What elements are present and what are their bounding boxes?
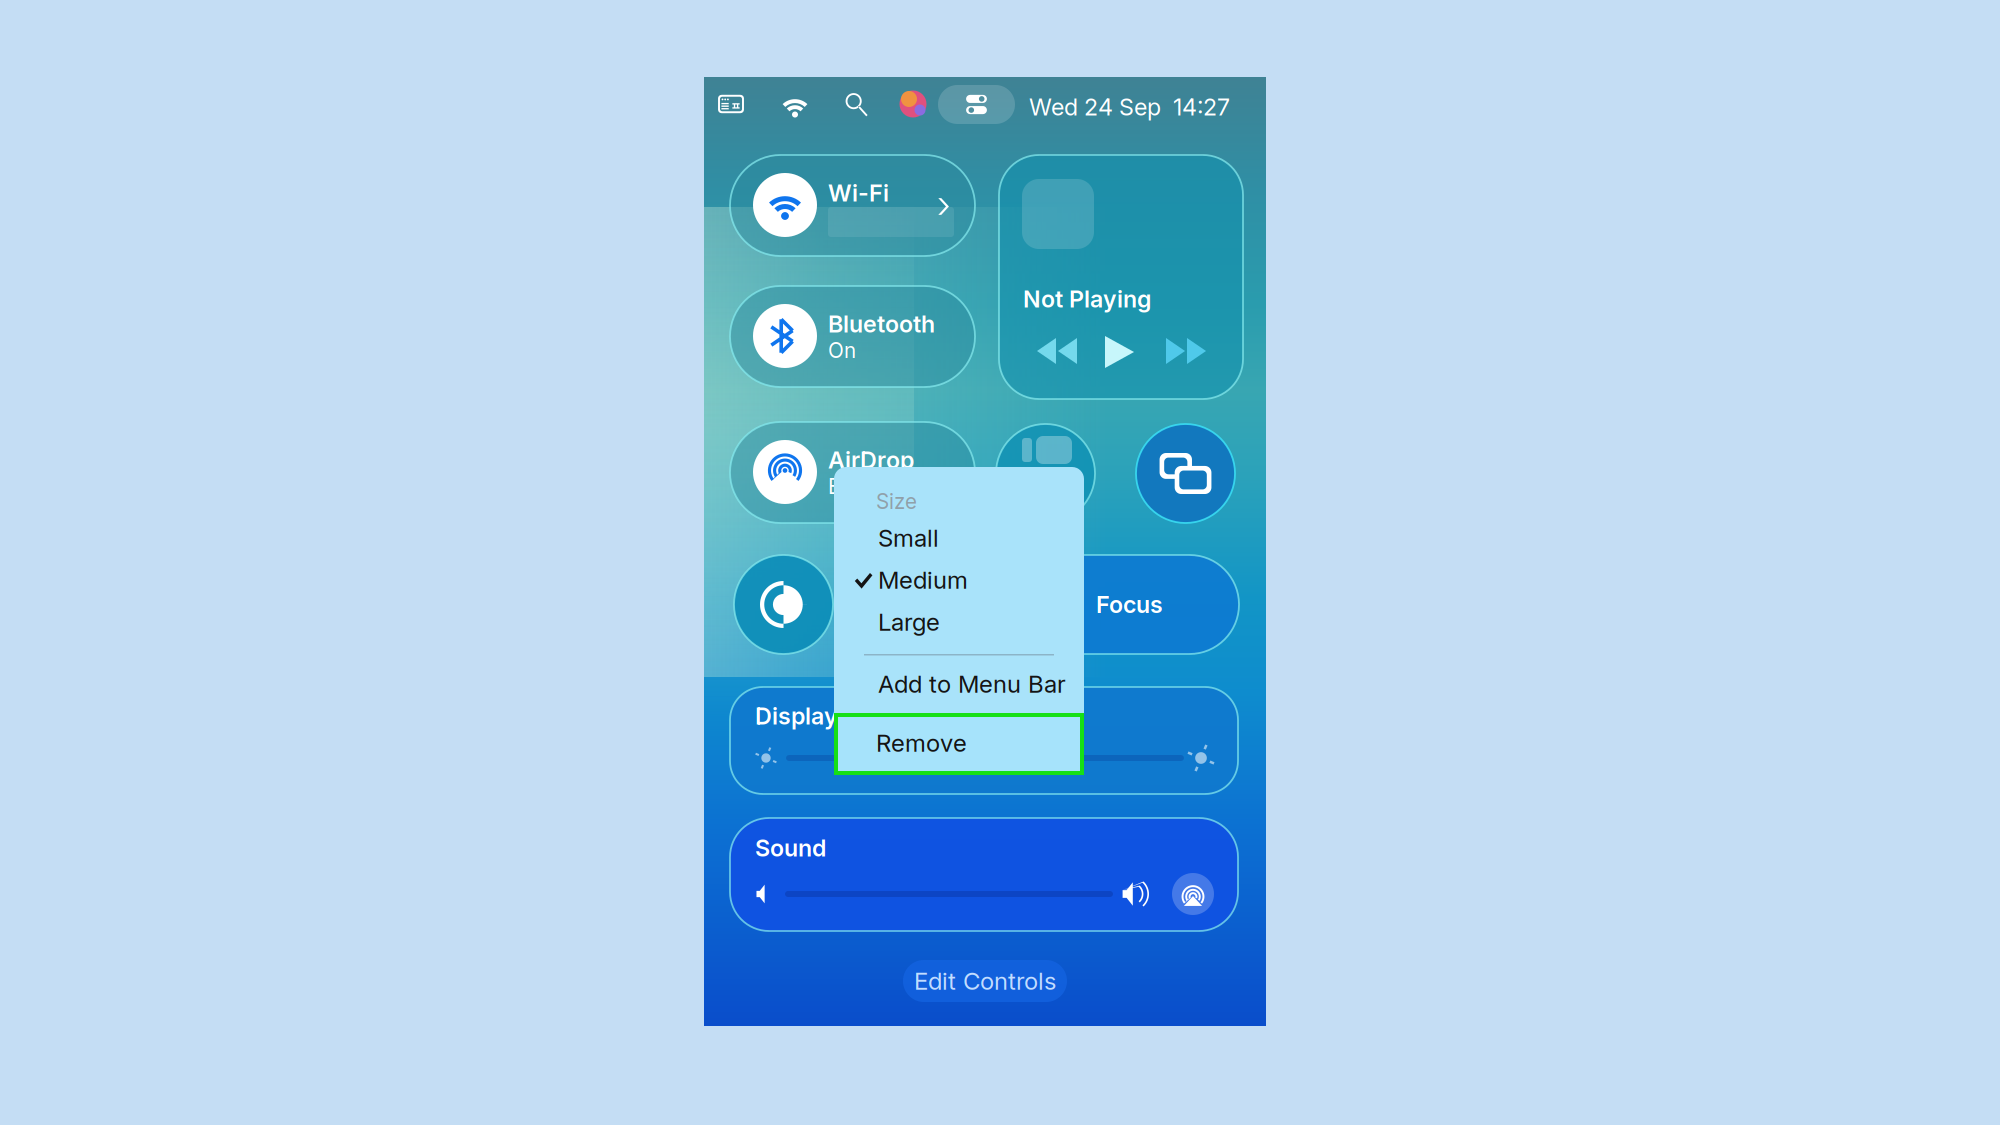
staticText: Wi-Fi <box>828 179 889 207</box>
button[interactable]: Display appearance <box>734 555 833 654</box>
staticText: Focus <box>1096 590 1163 619</box>
staticText: Small <box>878 523 939 552</box>
button[interactable]: Remove <box>834 713 1084 773</box>
staticText: Large <box>878 607 940 636</box>
button[interactable]: Wi-Fi <box>730 155 975 256</box>
button[interactable]: Control Center <box>938 85 1015 124</box>
staticText: On <box>828 338 856 363</box>
button[interactable]: Wi-Fi menu <box>773 84 817 128</box>
staticText: Wed 24 Sep 14:27 <box>1029 93 1230 121</box>
button[interactable]: Edit Controls <box>903 960 1067 1002</box>
button[interactable]: AirPlay output <box>1172 873 1214 915</box>
staticText: Not Playing <box>1023 285 1151 313</box>
button[interactable]: Siri <box>891 82 935 126</box>
button[interactable]: Medium <box>834 559 1084 601</box>
staticText: Size <box>876 489 917 514</box>
button[interactable]: Large <box>834 601 1084 643</box>
button[interactable]: Focus <box>853 555 1239 654</box>
button[interactable]: Small <box>834 517 1084 559</box>
button[interactable]: Stage Manager <box>996 424 1095 523</box>
button[interactable]: Bluetooth <box>730 286 975 387</box>
staticText: Edit Controls <box>914 966 1056 995</box>
button[interactable]: Add to Menu Bar <box>834 663 1084 705</box>
staticText: AirDrop <box>828 446 914 474</box>
staticText: Display <box>755 702 838 730</box>
staticText: Medium <box>878 565 968 594</box>
staticText: Sound <box>755 834 826 862</box>
staticText: Remove <box>876 728 967 757</box>
button[interactable]: Not Playing <box>999 155 1243 399</box>
staticText: Everyone <box>828 474 918 499</box>
button[interactable]: Keyboard input menu <box>709 82 753 126</box>
button[interactable]: Spotlight Search <box>834 82 878 126</box>
staticText: Bluetooth <box>828 310 935 338</box>
button[interactable]: AirDrop <box>730 422 975 523</box>
button[interactable]: Screen Mirroring <box>1136 424 1235 523</box>
staticText: Add to Menu Bar <box>878 669 1066 698</box>
